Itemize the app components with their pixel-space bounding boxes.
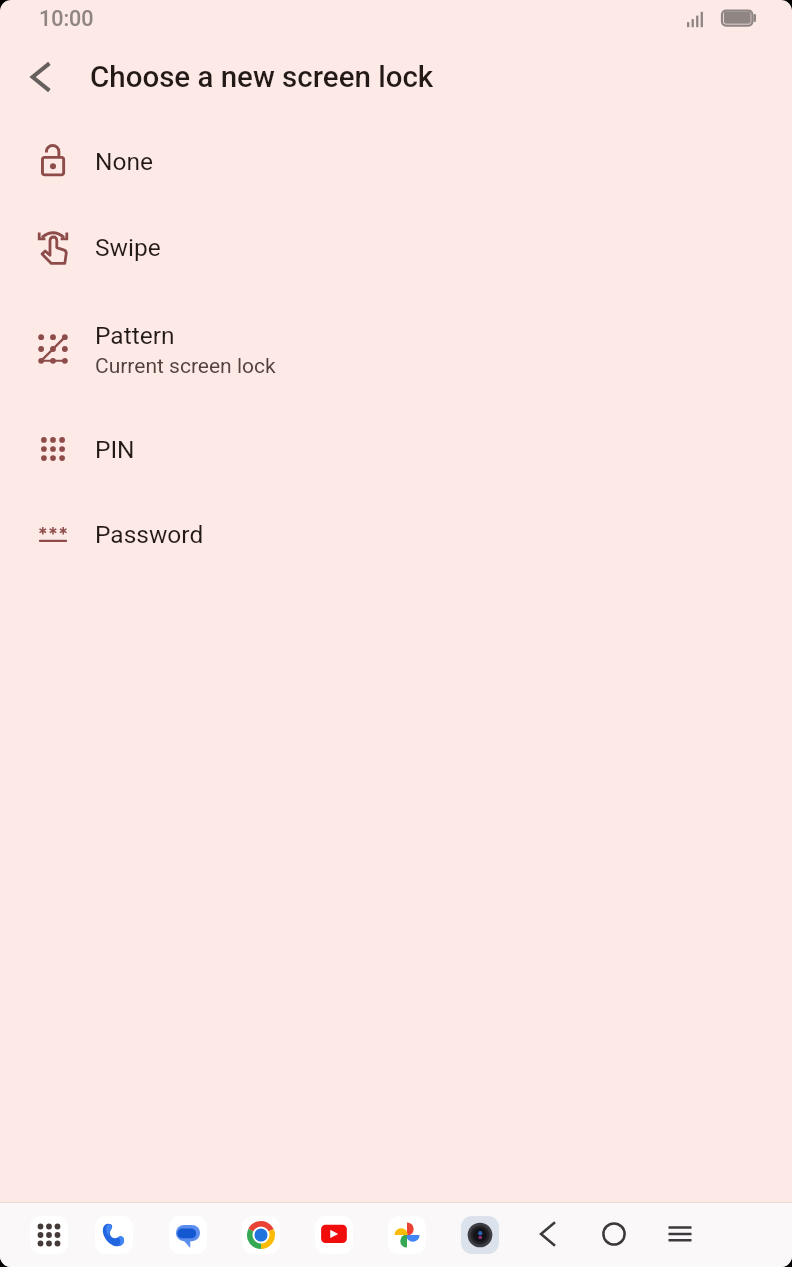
button[interactable]: Back <box>524 1210 572 1258</box>
button[interactable]: PIN <box>0 406 792 492</box>
button[interactable]: Photos <box>388 1216 426 1254</box>
staticText: Current screen lock <box>95 354 276 379</box>
button[interactable]: YouTube <box>315 1216 353 1254</box>
button[interactable]: Password <box>0 491 792 577</box>
button[interactable]: Swipe <box>0 204 792 290</box>
staticText: Pattern <box>95 321 175 350</box>
staticText: Password <box>95 520 204 549</box>
staticText: Choose a new screen lock <box>90 60 434 95</box>
button[interactable]: Back <box>17 53 65 101</box>
staticText: PIN <box>95 435 135 464</box>
button[interactable]: Pattern <box>0 299 792 401</box>
button[interactable]: None <box>0 118 792 204</box>
button[interactable]: Messages <box>169 1216 207 1254</box>
staticText: None <box>95 147 153 176</box>
button[interactable]: Home <box>590 1210 638 1258</box>
staticText: Swipe <box>95 233 161 262</box>
button[interactable]: Camera <box>461 1216 499 1254</box>
button[interactable]: Phone <box>95 1216 133 1254</box>
staticText: 10:00 <box>39 6 94 31</box>
button[interactable]: All apps <box>30 1216 68 1254</box>
button[interactable]: Recents <box>656 1210 704 1258</box>
button[interactable]: Chrome <box>242 1216 280 1254</box>
